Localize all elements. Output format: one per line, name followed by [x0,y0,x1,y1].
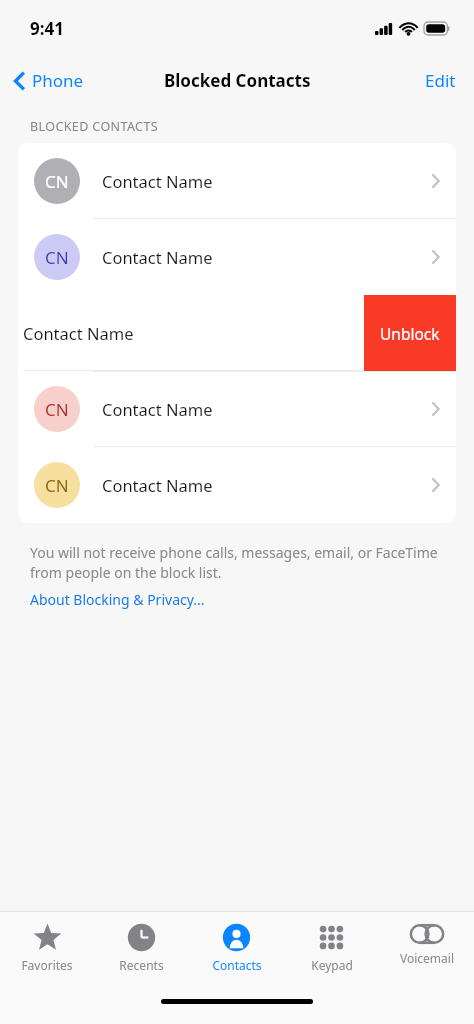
staticText: Contact Name [23,322,134,344]
button[interactable]: About Blocking & Privacy... [30,590,205,609]
staticText: Favorites [21,957,73,973]
staticText: About Blocking & Privacy... [30,590,205,609]
staticText: CN [45,246,69,269]
button[interactable]: Phone [0,63,94,98]
staticText: Contact Name [102,474,213,496]
button[interactable]: Edit [407,61,474,100]
staticText: CN [45,398,69,421]
button[interactable]: CN [18,447,456,523]
button[interactable]: Favorites [0,912,94,990]
staticText: CN [45,474,69,497]
button[interactable]: Keypad [284,912,379,990]
staticText: CN [45,170,69,193]
staticText: Keypad [311,957,353,973]
staticText: Contact Name [102,170,213,192]
staticText: Contacts [212,957,262,973]
staticText: Blocked Contacts [164,69,311,92]
staticText: Recents [119,957,164,973]
staticText: You will not receive phone calls, messag… [30,543,444,582]
staticText: Contact Name [102,398,213,420]
staticText: Voicemail [400,950,454,966]
staticText: 9:41 [30,17,64,40]
staticText: Unblock [380,323,440,344]
button[interactable]: Contact Name [18,295,456,371]
staticText: Contact Name [102,246,213,268]
button[interactable]: Contacts [189,912,284,990]
staticText: BLOCKED CONTACTS [30,118,158,135]
button[interactable]: CN [18,219,456,295]
button[interactable]: Unblock [364,295,456,371]
staticText: Phone [32,69,84,92]
button[interactable]: CN [18,143,456,219]
staticText: Edit [425,69,456,92]
button[interactable]: Voicemail [379,912,474,990]
button[interactable]: Recents [94,912,189,990]
button[interactable]: CN [18,371,456,447]
